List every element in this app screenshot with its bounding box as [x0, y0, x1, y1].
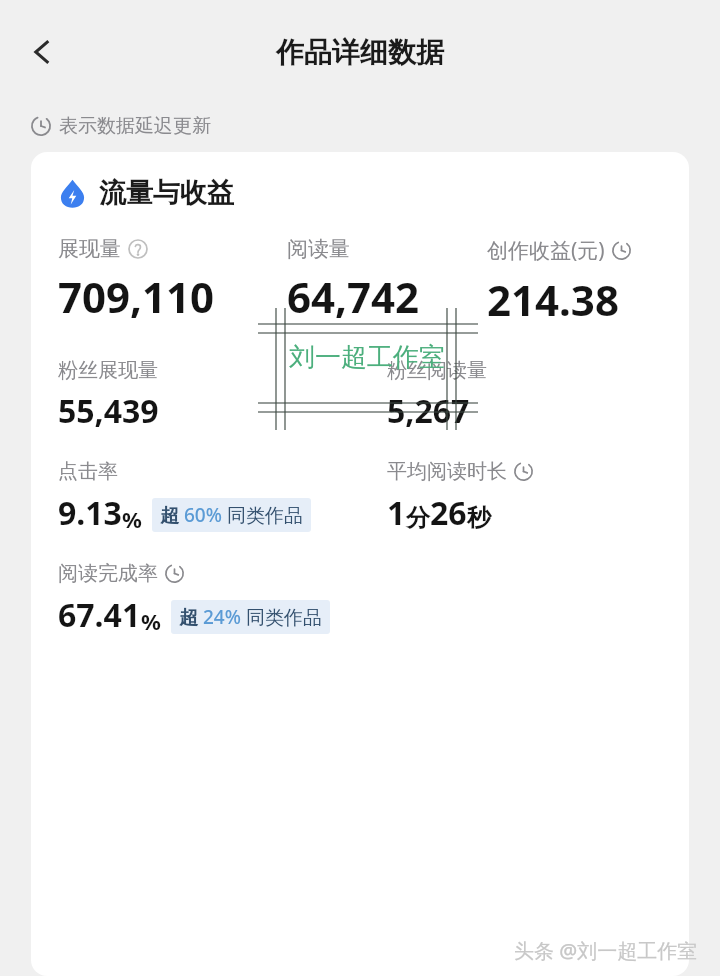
staticText: 214.38 — [487, 271, 619, 328]
staticText: 点击率 — [58, 459, 118, 484]
staticText: 同类作品 — [222, 502, 303, 528]
staticText: 1 — [387, 491, 406, 535]
staticText: 展现量 — [58, 236, 121, 262]
staticText: 超 — [160, 502, 184, 528]
staticText: 头条 @刘一超工作室 — [514, 937, 698, 964]
button[interactable]: Back — [16, 26, 68, 78]
staticText: 作品详细数据 — [276, 35, 444, 70]
staticText: 9.13 — [58, 491, 122, 535]
staticText: 表示数据延迟更新 — [59, 114, 211, 138]
staticText: 67.41 — [58, 593, 141, 637]
staticText: 平均阅读时长 — [387, 459, 507, 484]
staticText: 60% — [184, 502, 222, 528]
staticText: % — [122, 504, 142, 534]
staticText: 5,267 — [387, 389, 470, 433]
staticText: 粉丝阅读量 — [387, 358, 487, 383]
staticText: 刘一超工作室 — [289, 341, 445, 374]
staticText: 创作收益(元) — [487, 236, 605, 265]
staticText: 24% — [203, 604, 241, 630]
staticText: 26 — [430, 491, 467, 535]
staticText: % — [141, 606, 161, 636]
staticText: 秒 — [467, 503, 491, 533]
staticText: 粉丝展现量 — [58, 358, 158, 383]
staticText: 流量与收益 — [99, 176, 234, 210]
staticText: 55,439 — [58, 389, 159, 433]
staticText: 超 — [179, 604, 203, 630]
staticText: 64,742 — [287, 268, 420, 325]
staticText: 阅读完成率 — [58, 561, 158, 586]
staticText: 同类作品 — [241, 604, 322, 630]
staticText: 709,110 — [58, 268, 215, 325]
button[interactable]: 流量与收益 — [31, 152, 689, 976]
staticText: 分 — [406, 503, 430, 533]
staticText: 阅读量 — [287, 236, 350, 262]
